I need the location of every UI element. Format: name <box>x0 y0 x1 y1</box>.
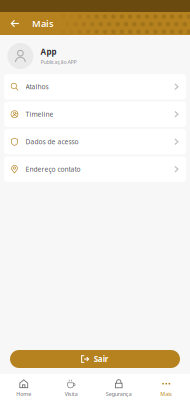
staticText: Endereço contato <box>25 165 80 174</box>
button[interactable]: Sair <box>10 350 180 368</box>
button[interactable]: Endereço contato <box>4 156 186 182</box>
staticText: Sair <box>94 354 109 364</box>
button[interactable]: Dados de acesso <box>4 129 186 154</box>
staticText: Dados de acesso <box>25 137 78 146</box>
button[interactable]: Back <box>7 15 23 31</box>
staticText: Atalhos <box>25 82 48 91</box>
staticText: App <box>40 46 56 57</box>
staticText: Timeline <box>25 110 53 119</box>
button[interactable]: Timeline <box>4 101 186 127</box>
staticText: Segurança <box>106 390 132 397</box>
button[interactable]: Home <box>0 374 47 400</box>
staticText: Mais <box>160 390 172 397</box>
button[interactable]: Atalhos <box>4 74 186 99</box>
staticText: Mais <box>32 17 54 30</box>
staticText: Publicação APP <box>40 58 76 66</box>
button[interactable]: Segurança <box>95 374 142 400</box>
button[interactable]: Visita <box>47 374 95 400</box>
staticText: Visita <box>65 390 78 397</box>
staticText: Home <box>16 390 31 397</box>
button[interactable]: Mais <box>142 374 190 400</box>
